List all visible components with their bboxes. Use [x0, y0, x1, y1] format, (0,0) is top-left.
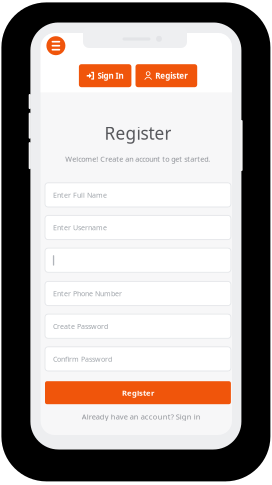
button[interactable]: Sign In — [79, 64, 131, 87]
staticText: Enter Phone Number — [53, 289, 122, 298]
staticText: Create Password — [53, 321, 108, 331]
staticText: Sign In — [97, 70, 123, 81]
button[interactable]: Menu — [46, 36, 65, 55]
staticText: Register — [155, 70, 188, 81]
staticText: Already have an account? Sign in — [82, 411, 201, 422]
button[interactable]: Register — [45, 381, 231, 404]
staticText: Enter Username — [53, 223, 107, 232]
staticText: Confirm Password — [53, 354, 112, 364]
staticText: Register — [122, 387, 154, 398]
staticText: Welcome! Create an account to get starte… — [65, 154, 210, 164]
staticText: Enter Full Name — [53, 190, 107, 200]
staticText: Register — [104, 121, 171, 145]
button[interactable]: Register — [135, 64, 197, 87]
button[interactable]: Already have an account? Sign in — [46, 410, 237, 422]
